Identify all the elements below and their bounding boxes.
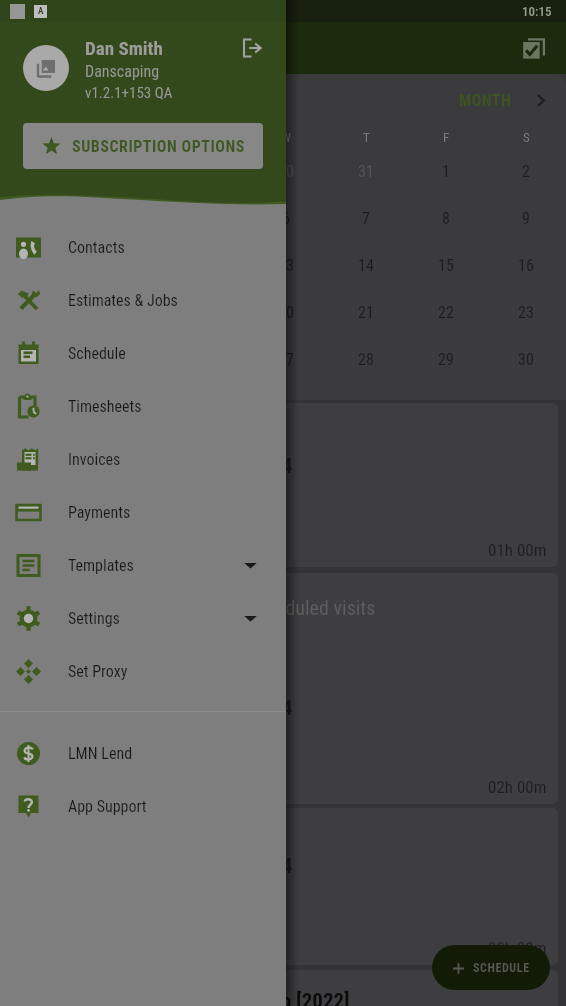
button[interactable]: LMN Lend xyxy=(0,727,286,780)
staticText: 30 xyxy=(278,162,294,181)
staticText: 21 xyxy=(358,303,374,322)
staticText: 6 xyxy=(282,209,290,228)
staticText: T xyxy=(363,130,370,145)
button[interactable]: Settings xyxy=(0,592,286,645)
staticText: 29 xyxy=(438,350,454,369)
staticText: Mon, Oct 24 xyxy=(191,854,293,879)
button[interactable]: MONTH xyxy=(449,85,559,116)
button[interactable]: 28 xyxy=(326,336,406,383)
staticText: 10 xyxy=(37,256,53,275)
button[interactable]: 30 xyxy=(486,336,566,383)
button[interactable]: 6 xyxy=(246,195,326,242)
button[interactable]: 21 xyxy=(326,289,406,336)
button[interactable]: 14 xyxy=(326,242,406,289)
button[interactable]: 23 xyxy=(486,289,566,336)
staticText: 25 xyxy=(118,350,134,369)
button[interactable]: Contacts xyxy=(0,221,286,274)
button[interactable]: 3 xyxy=(4,195,85,242)
button[interactable]: 5 xyxy=(166,195,246,242)
button[interactable]: 18 xyxy=(85,289,166,336)
button[interactable]: No scheduled visits xyxy=(8,573,558,804)
staticText: 01h 00m xyxy=(488,540,547,560)
button[interactable]: Dan's Job [2022] xyxy=(8,970,558,1006)
staticText: W xyxy=(281,130,291,145)
staticText: SCHEDULE xyxy=(473,961,530,975)
staticText: 00h 30m xyxy=(488,938,547,958)
button[interactable]: 29 xyxy=(166,148,246,195)
button[interactable]: Log out xyxy=(237,33,267,63)
staticText: 13 xyxy=(278,256,294,275)
staticText: F xyxy=(443,130,450,145)
staticText: S xyxy=(523,130,530,145)
staticText: Schedule xyxy=(68,344,286,363)
button[interactable]: 25 xyxy=(85,336,166,383)
button[interactable]: Payments xyxy=(0,486,286,539)
button[interactable]: 15 xyxy=(406,242,486,289)
button[interactable]: App Support xyxy=(0,780,286,833)
staticText: 15 xyxy=(438,256,454,275)
button[interactable]: 20 xyxy=(246,289,326,336)
button[interactable]: 27 xyxy=(246,336,326,383)
button[interactable]: 10 xyxy=(4,242,85,289)
staticText: 02h 00m xyxy=(488,777,547,797)
button[interactable]: Mon, Oct 24 xyxy=(8,403,558,567)
staticText: SUBSCRIPTION OPTIONS xyxy=(72,137,245,156)
button[interactable]: Templates xyxy=(0,539,286,592)
staticText: 14 xyxy=(358,256,374,275)
staticText: 27 xyxy=(37,162,53,181)
staticText: v1.2.1+153 QA xyxy=(85,84,173,102)
staticText: Timesheets xyxy=(68,397,286,416)
button[interactable]: 4 xyxy=(85,195,166,242)
button[interactable]: 24 xyxy=(4,336,85,383)
staticText: Dan Smith xyxy=(85,37,163,59)
button[interactable]: 29 xyxy=(406,336,486,383)
staticText: Contacts xyxy=(68,238,286,257)
button[interactable]: 16 xyxy=(486,242,566,289)
staticText: Invoices xyxy=(68,450,286,469)
button[interactable]: 27 xyxy=(4,148,85,195)
button[interactable]: Timesheets xyxy=(0,380,286,433)
button[interactable]: Estimates & Jobs xyxy=(0,274,286,327)
staticText: 9 xyxy=(522,209,530,228)
button[interactable]: 28 xyxy=(85,148,166,195)
button[interactable]: 30 xyxy=(246,148,326,195)
button[interactable]: SCHEDULE xyxy=(432,945,550,990)
button[interactable]: Profile photo xyxy=(23,45,69,91)
staticText: 27 xyxy=(278,350,294,369)
button[interactable]: Mon, Oct 24 xyxy=(8,808,558,965)
button[interactable]: 19 xyxy=(166,289,246,336)
staticText: 16 xyxy=(518,256,534,275)
button[interactable]: Set Proxy xyxy=(0,645,286,698)
staticText: No scheduled visits xyxy=(221,596,376,619)
button[interactable]: SUBSCRIPTION OPTIONS xyxy=(23,123,263,169)
staticText: 29 xyxy=(198,162,214,181)
button[interactable]: Invoices xyxy=(0,433,286,486)
button[interactable]: Select tasks xyxy=(512,27,554,69)
staticText: 28 xyxy=(118,162,134,181)
button[interactable]: 17 xyxy=(4,289,85,336)
staticText: Templates xyxy=(68,556,243,575)
button[interactable]: Schedule xyxy=(0,327,286,380)
staticText: Payments xyxy=(68,503,286,522)
staticText: 2 xyxy=(522,162,530,181)
staticText: 28 xyxy=(358,350,374,369)
staticText: Danscaping xyxy=(85,62,160,81)
button[interactable]: 11 xyxy=(85,242,166,289)
staticText: 18 xyxy=(118,303,134,322)
staticText: App Support xyxy=(68,797,286,816)
staticText: A xyxy=(38,6,44,17)
button[interactable]: 13 xyxy=(246,242,326,289)
button[interactable]: 22 xyxy=(406,289,486,336)
